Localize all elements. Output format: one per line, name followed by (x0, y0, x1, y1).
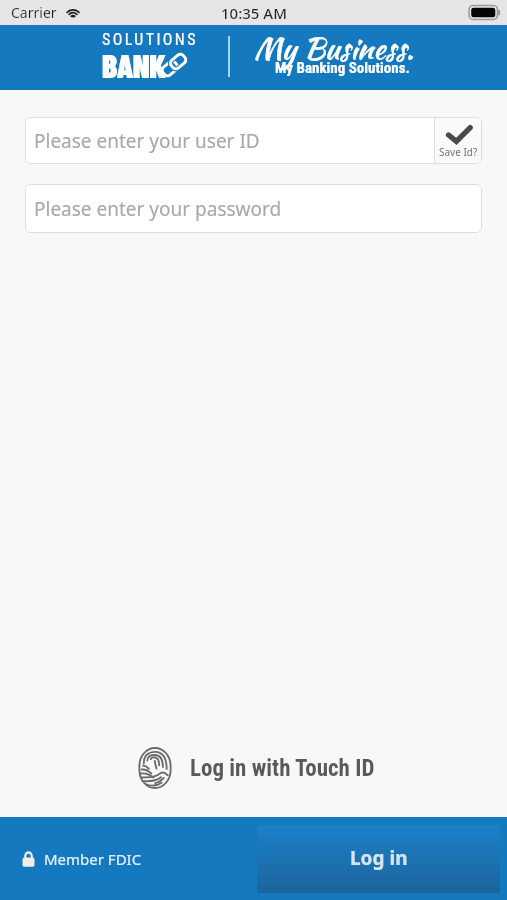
staticText: Member FDIC (44, 849, 142, 869)
button[interactable]: Please enter your password (25, 184, 482, 233)
staticText: Please enter your user ID (34, 128, 260, 154)
staticText: Log in (350, 845, 408, 871)
button[interactable]: Member FDIC (22, 849, 142, 869)
staticText: 10:35 AM (221, 3, 287, 23)
button[interactable]: Save user ID (434, 117, 482, 164)
staticText: My Banking Solutions. (275, 59, 410, 77)
button[interactable]: Log in with Touch ID (133, 746, 375, 790)
staticText: Carrier (11, 3, 57, 22)
staticText: BANK (102, 46, 166, 84)
staticText: Log in with Touch ID (190, 755, 375, 782)
button[interactable]: Please enter your user ID (25, 117, 482, 164)
button[interactable]: Log in (257, 825, 500, 893)
staticText: Please enter your password (34, 196, 282, 222)
staticText: Save Id? (439, 145, 478, 159)
staticText: SOLUTIONS (102, 30, 198, 49)
staticText: My Business. (254, 26, 414, 70)
